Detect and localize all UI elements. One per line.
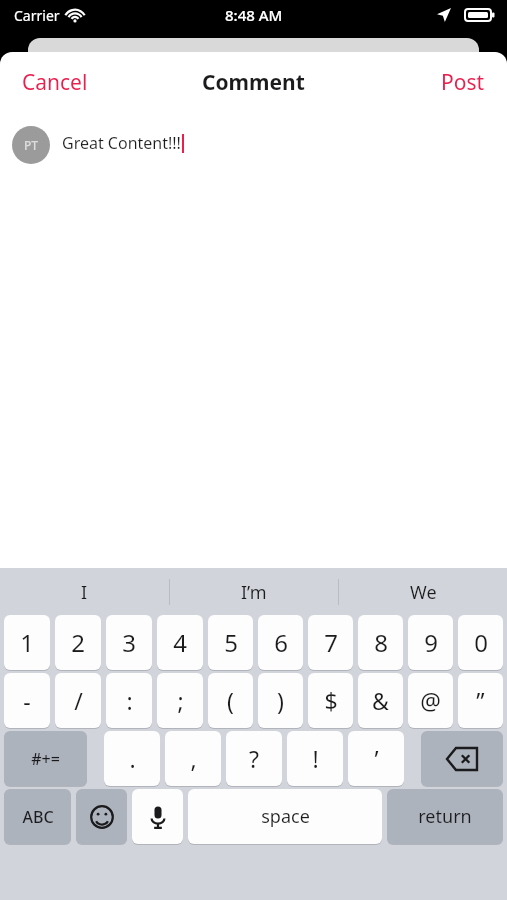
button[interactable]: @ — [408, 673, 453, 728]
button[interactable]: 4 — [157, 615, 203, 670]
button[interactable]: $ — [308, 673, 353, 728]
staticText: ABC — [22, 806, 54, 828]
button[interactable]: - — [4, 673, 50, 728]
button[interactable]: 7 — [308, 615, 353, 670]
staticText: 0 — [474, 626, 488, 659]
button[interactable]: space — [188, 789, 382, 844]
button[interactable]: return — [387, 789, 503, 844]
button[interactable]: : — [106, 673, 152, 728]
staticText: - — [23, 685, 31, 716]
button[interactable]: ; — [157, 673, 203, 728]
button[interactable]: I — [0, 568, 169, 616]
staticText: ! — [312, 743, 319, 774]
staticText: space — [261, 804, 310, 829]
staticText: ” — [476, 685, 485, 716]
staticText: ’ — [374, 743, 379, 774]
button[interactable]: 5 — [208, 615, 253, 670]
staticText: 5 — [224, 626, 238, 659]
button[interactable]: ’ — [348, 731, 404, 786]
staticText: 8:48 AM — [225, 5, 283, 25]
button[interactable]: / — [55, 673, 101, 728]
staticText: : — [126, 685, 133, 716]
staticText: Great Content!!! — [62, 132, 181, 154]
staticText: , — [190, 743, 197, 774]
staticText: @ — [420, 685, 441, 716]
staticText: Carrier — [14, 6, 60, 25]
button[interactable]: , — [165, 731, 221, 786]
staticText: / — [74, 685, 83, 716]
staticText: 1 — [20, 626, 34, 659]
button[interactable]: Cancel — [0, 58, 110, 107]
button[interactable]: Post — [419, 58, 507, 107]
button[interactable]: ! — [287, 731, 343, 786]
staticText: 3 — [122, 626, 136, 659]
staticText: $ — [324, 685, 338, 716]
staticText: ) — [277, 685, 284, 716]
staticText: PT — [24, 137, 39, 153]
button[interactable]: ) — [258, 673, 303, 728]
button[interactable]: . — [104, 731, 160, 786]
staticText: 2 — [71, 626, 85, 659]
staticText: Post — [441, 68, 485, 97]
staticText: ( — [227, 685, 234, 716]
button[interactable]: Dictate — [132, 789, 183, 844]
button[interactable]: ( — [208, 673, 253, 728]
staticText: return — [418, 804, 472, 829]
button[interactable]: Emoji — [76, 789, 127, 844]
staticText: . — [129, 743, 136, 774]
staticText: & — [372, 685, 389, 716]
staticText: 4 — [173, 626, 187, 659]
button[interactable]: 6 — [258, 615, 303, 670]
button[interactable]: We — [339, 568, 507, 616]
staticText: 8 — [374, 626, 388, 659]
button[interactable]: 3 — [106, 615, 152, 670]
staticText: Comment — [202, 68, 305, 97]
button[interactable]: 1 — [4, 615, 50, 670]
button[interactable]: ABC — [4, 789, 71, 844]
button[interactable]: #+= — [4, 731, 87, 786]
staticText: I — [81, 580, 88, 605]
staticText: 7 — [324, 626, 338, 659]
staticText: ? — [249, 743, 259, 774]
button[interactable]: I’m — [170, 568, 338, 616]
staticText: We — [410, 580, 437, 605]
button[interactable]: Backspace — [421, 731, 503, 786]
button[interactable]: 2 — [55, 615, 101, 670]
button[interactable]: 8 — [358, 615, 403, 670]
button[interactable]: & — [358, 673, 403, 728]
staticText: 9 — [424, 626, 438, 659]
button[interactable]: Great Content!!! — [62, 132, 184, 154]
staticText: I’m — [241, 580, 267, 605]
button[interactable]: ” — [458, 673, 503, 728]
staticText: 6 — [274, 626, 288, 659]
button[interactable]: 9 — [408, 615, 453, 670]
button[interactable]: ? — [226, 731, 282, 786]
staticText: ; — [177, 685, 184, 716]
button[interactable]: 0 — [458, 615, 503, 670]
staticText: #+= — [31, 748, 60, 770]
staticText: Cancel — [22, 68, 88, 97]
